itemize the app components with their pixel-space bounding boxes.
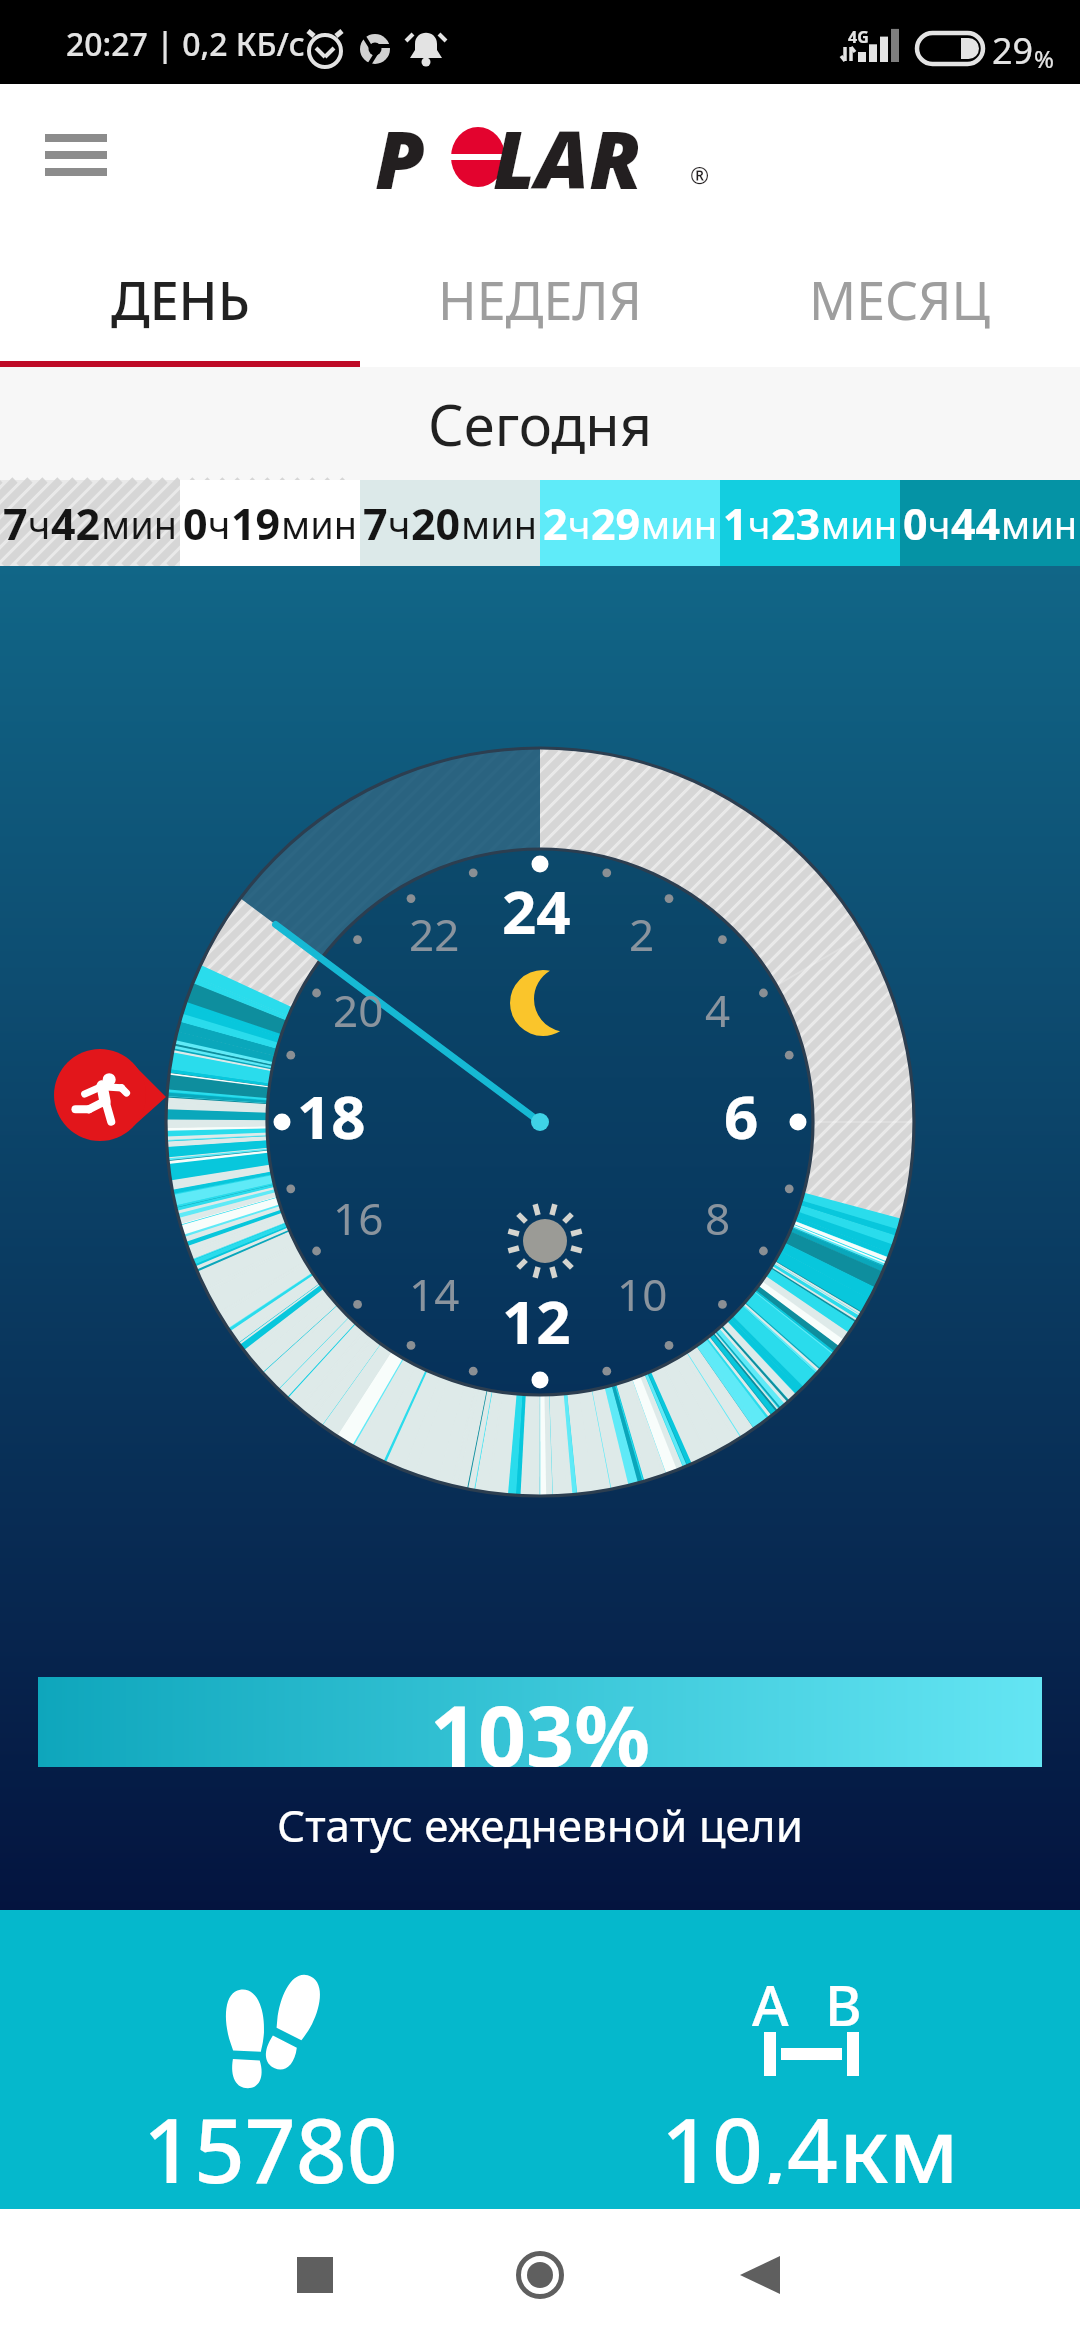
staticText: 6 (724, 1075, 759, 1151)
button[interactable]: Menu (24, 103, 128, 207)
staticText: P (375, 103, 425, 212)
staticText: МЕСЯЦ (809, 264, 991, 335)
staticText: 7 (363, 494, 388, 553)
button[interactable]: Back (705, 2220, 815, 2330)
staticText: мин (1001, 498, 1078, 550)
staticText: 14 (409, 1264, 460, 1324)
staticText: мин (101, 498, 178, 550)
staticText: 10 (617, 1264, 668, 1324)
staticText: A (752, 1966, 789, 2042)
button[interactable]: 1 (720, 480, 900, 566)
staticText: мин (461, 498, 538, 550)
staticText: км (839, 2088, 959, 2184)
staticText: 4G (848, 26, 869, 48)
staticText: 2 (629, 904, 655, 964)
staticText: Статус ежедневной цели (277, 1795, 804, 1855)
staticText: 0 (183, 494, 208, 553)
staticText: 29 (992, 26, 1034, 75)
staticText: ч (28, 498, 51, 550)
staticText: 18 (297, 1075, 366, 1151)
staticText: Сегодня (428, 386, 653, 462)
button[interactable]: МЕСЯЦ (720, 226, 1080, 361)
staticText: 2 (543, 494, 568, 553)
staticText: мин (281, 498, 358, 550)
staticText: 20 (333, 980, 384, 1040)
staticText: % (1034, 42, 1054, 75)
staticText: ДЕНЬ (111, 264, 250, 335)
staticText: ч (568, 498, 591, 550)
staticText: 12 (502, 1280, 571, 1356)
button[interactable]: 0 (900, 480, 1080, 566)
staticText: 22 (409, 904, 460, 964)
staticText: ч (388, 498, 411, 550)
button[interactable]: 0 (180, 480, 360, 566)
staticText: мин (821, 498, 898, 550)
staticText: 16 (333, 1188, 384, 1248)
button[interactable]: A (540, 1910, 1080, 2209)
staticText: 44 (951, 494, 1001, 553)
staticText: ч (928, 498, 951, 550)
staticText: 24 (502, 870, 571, 946)
button[interactable]: ДЕНЬ (0, 226, 360, 361)
button[interactable]: Home (485, 2220, 595, 2330)
staticText: 23 (771, 494, 821, 553)
staticText: 1 (723, 494, 748, 553)
button[interactable]: 7 (0, 480, 180, 566)
staticText: ® (690, 159, 710, 190)
staticText: ч (748, 498, 771, 550)
staticText: 4 (705, 980, 731, 1040)
staticText: 29 (591, 494, 641, 553)
staticText: 42 (51, 494, 101, 553)
staticText: 7 (3, 494, 28, 553)
button[interactable]: 15780 (0, 1910, 540, 2209)
button[interactable]: 2 (540, 480, 720, 566)
staticText: 0 (903, 494, 928, 553)
staticText: 20:27 | 0,2 КБ/с (66, 22, 305, 66)
staticText: LAR (493, 103, 642, 212)
staticText: 20 (411, 494, 461, 553)
staticText: 8 (705, 1188, 731, 1248)
staticText: B (825, 1966, 862, 2042)
staticText: НЕДЕЛЯ (438, 264, 642, 335)
staticText: мин (641, 498, 718, 550)
button[interactable]: Recents (260, 2220, 370, 2330)
button[interactable]: 7 (360, 480, 540, 566)
button[interactable]: Сегодня (0, 367, 1080, 480)
staticText: ч (208, 498, 231, 550)
button[interactable]: НЕДЕЛЯ (360, 226, 720, 361)
button[interactable]: 103% (38, 1677, 1042, 1767)
staticText: 19 (231, 494, 281, 553)
staticText: 15780 (143, 2088, 398, 2184)
staticText: 103% (430, 1677, 650, 1767)
staticText: 10,4 (661, 2088, 839, 2184)
